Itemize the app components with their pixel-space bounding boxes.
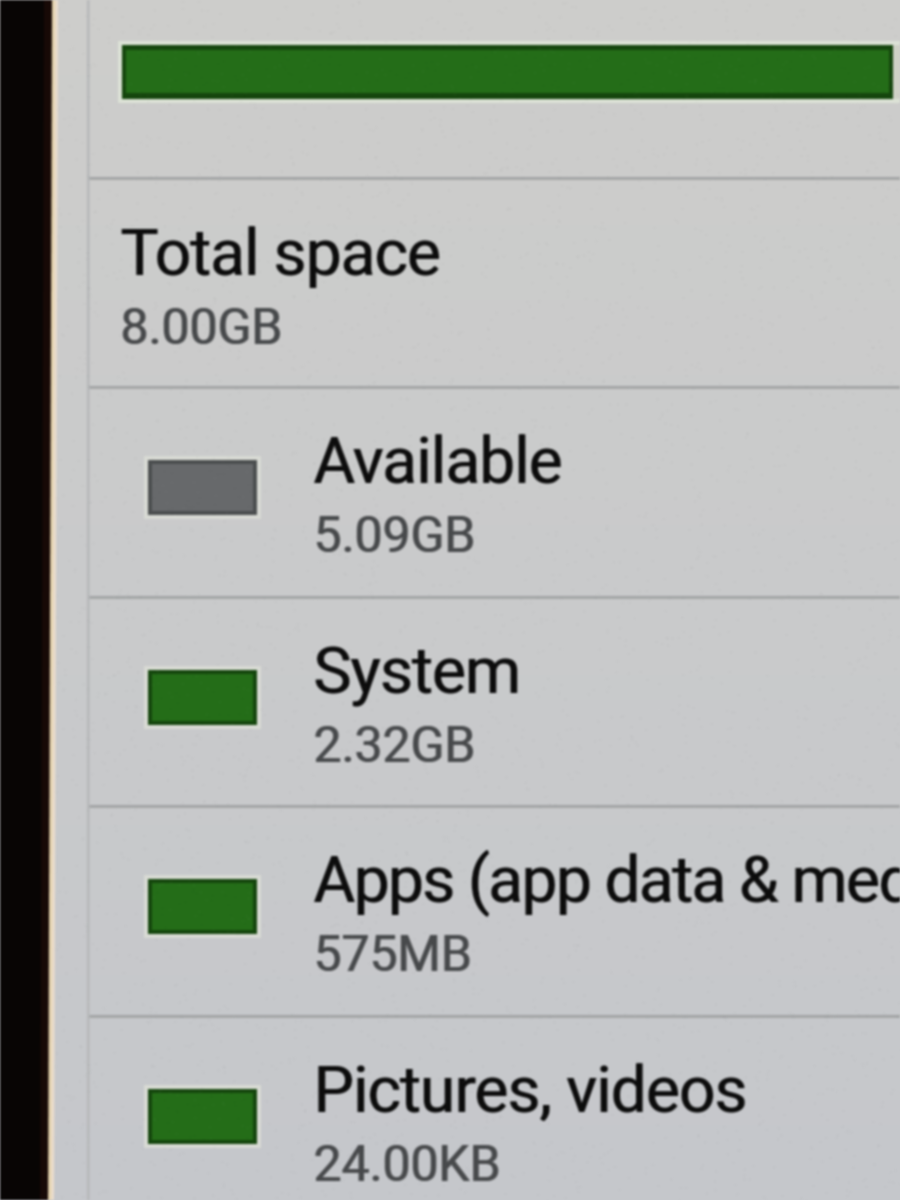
staticText: 8.00GB (121, 298, 283, 357)
button[interactable]: System (88, 596, 900, 806)
staticText: 5.09GB (314, 506, 476, 565)
staticText: 24.00KB (314, 1135, 502, 1194)
staticText: Available (314, 424, 563, 499)
staticText: 8.00GB (120, 298, 282, 357)
button[interactable]: Apps (app data & media) (88, 805, 900, 1015)
staticText: 575MB (313, 925, 472, 984)
staticText: Apps (app data & media) (313, 843, 900, 918)
button[interactable]: Available (88, 386, 900, 596)
staticText: 24.00KB (313, 1135, 501, 1194)
staticText: 2.32GB (314, 716, 476, 775)
staticText: Apps (app data & media) (314, 843, 900, 918)
staticText: 575MB (314, 925, 473, 984)
button[interactable]: Pictures, videos (88, 1015, 900, 1200)
staticText: System (314, 634, 521, 709)
staticText: Total space (120, 216, 440, 291)
staticText: Available (313, 424, 562, 499)
staticText: 5.09GB (313, 506, 475, 565)
staticText: Pictures, videos (313, 1053, 747, 1128)
staticText: Total space (121, 216, 441, 291)
staticText: 2.32GB (313, 716, 475, 775)
staticText: Pictures, videos (314, 1053, 748, 1128)
staticText: System (313, 634, 520, 709)
button[interactable]: Total space (88, 182, 900, 387)
